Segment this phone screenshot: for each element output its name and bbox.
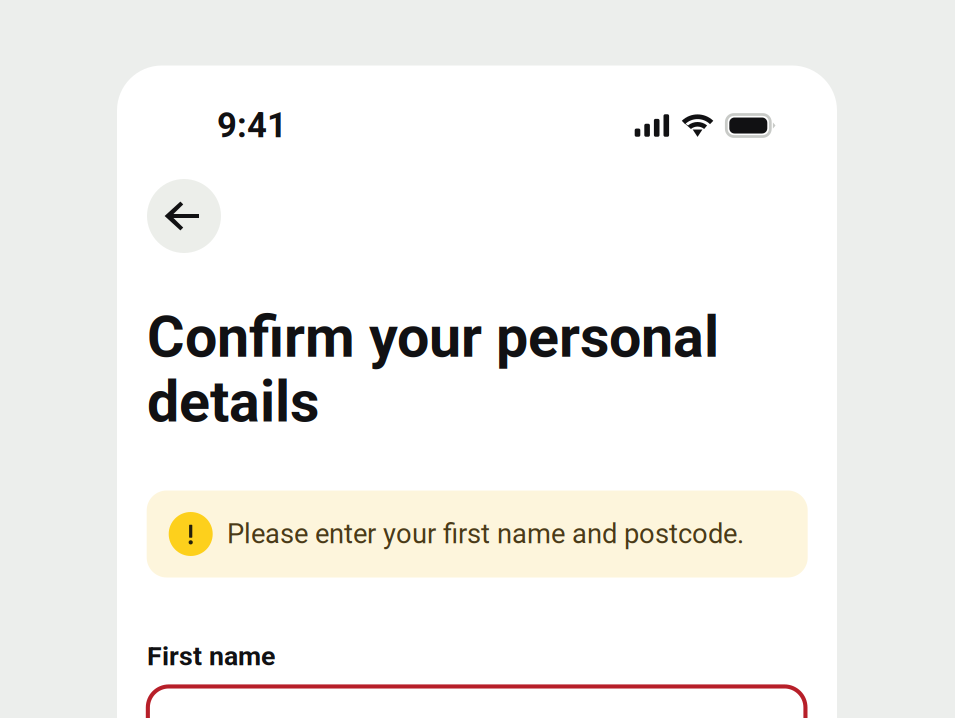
staticText: Please enter your first name and postcod… (227, 518, 744, 550)
staticText: 9:41 (217, 105, 287, 146)
staticText: Confirm your personal (147, 303, 719, 371)
staticText: First name (147, 640, 275, 672)
button[interactable]: Back (147, 179, 221, 253)
button[interactable]: First name text field (146, 684, 807, 718)
staticText: details (147, 368, 319, 435)
